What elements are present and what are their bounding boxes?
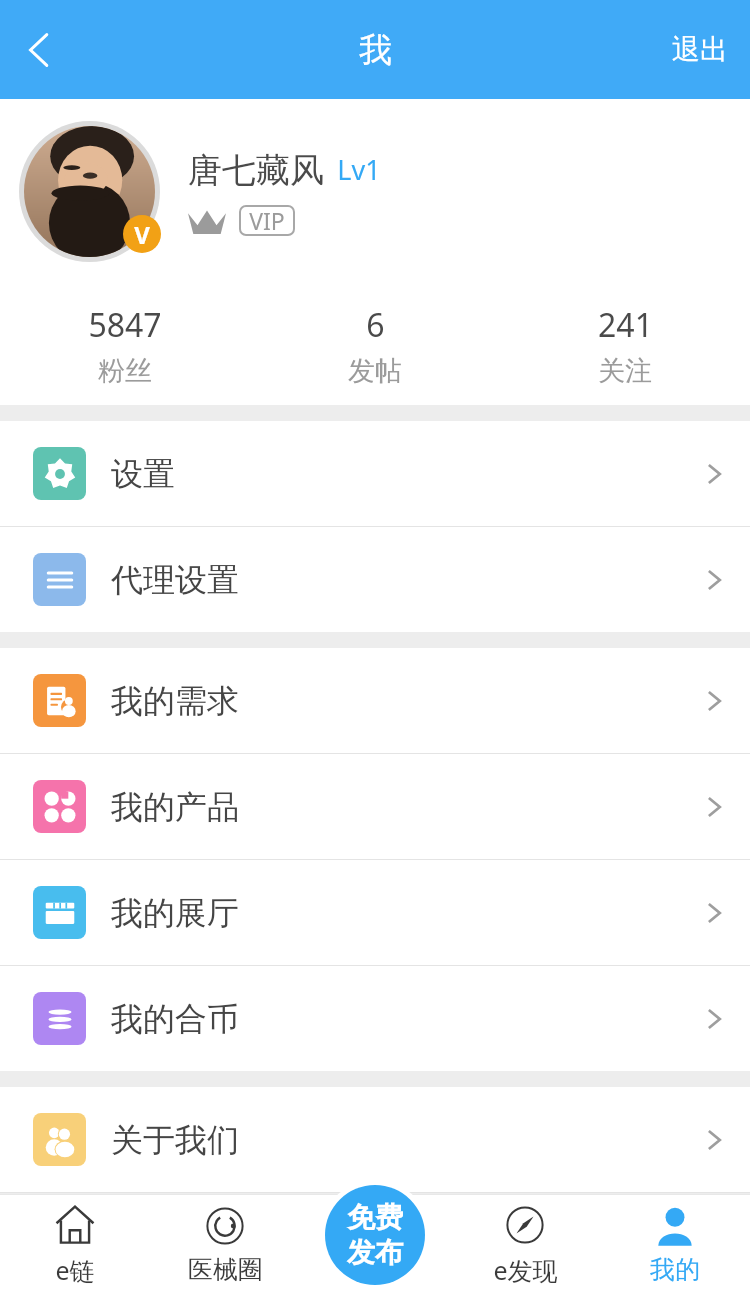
staticText: 我的 <box>650 1254 700 1285</box>
staticText: Lv1 <box>337 151 381 188</box>
staticText: 6 <box>366 303 385 347</box>
button[interactable]: 医械圈 <box>150 1195 300 1294</box>
button[interactable]: Back <box>0 12 76 88</box>
button[interactable]: 我的产品 <box>0 754 750 859</box>
staticText: 241 <box>598 303 653 347</box>
button[interactable]: e链 <box>0 1195 150 1294</box>
button[interactable]: 代理设置 <box>0 527 750 632</box>
button[interactable]: 退出 <box>658 18 742 81</box>
staticText: 代理设置 <box>111 560 239 600</box>
button[interactable]: Profile avatar <box>19 121 163 265</box>
staticText: 我的展厅 <box>111 893 239 933</box>
staticText: 关于我们 <box>111 1120 239 1160</box>
staticText: 发布 <box>347 1235 403 1270</box>
staticText: 我的产品 <box>111 787 239 827</box>
button[interactable]: 6 <box>250 286 500 405</box>
button[interactable]: 我的展厅 <box>0 860 750 965</box>
button[interactable]: 关于我们 <box>0 1087 750 1192</box>
button[interactable]: 5847 <box>0 286 250 405</box>
staticText: e发现 <box>493 1253 558 1287</box>
staticText: 我的合币 <box>111 999 239 1039</box>
staticText: 关注 <box>598 354 652 388</box>
staticText: 唐七藏风 <box>188 149 324 192</box>
button[interactable]: 设置 <box>0 421 750 526</box>
staticText: 退出 <box>672 32 728 67</box>
staticText: 医械圈 <box>188 1254 263 1285</box>
button[interactable]: 我的合币 <box>0 966 750 1071</box>
staticText: 粉丝 <box>98 354 152 388</box>
button[interactable]: 241 <box>500 286 750 405</box>
staticText: 我 <box>359 29 392 71</box>
staticText: VIP <box>249 205 285 236</box>
staticText: V <box>134 218 150 251</box>
staticText: 我的需求 <box>111 681 239 721</box>
button[interactable]: 我的 <box>600 1195 750 1294</box>
button[interactable]: 免费发布 <box>325 1185 425 1285</box>
staticText: e链 <box>55 1253 95 1287</box>
button[interactable]: e发现 <box>450 1195 600 1294</box>
button[interactable]: 我的需求 <box>0 648 750 753</box>
staticText: 免费 <box>347 1200 403 1235</box>
staticText: 发帖 <box>348 354 402 388</box>
staticText: 设置 <box>111 454 175 494</box>
staticText: 5847 <box>88 303 162 347</box>
